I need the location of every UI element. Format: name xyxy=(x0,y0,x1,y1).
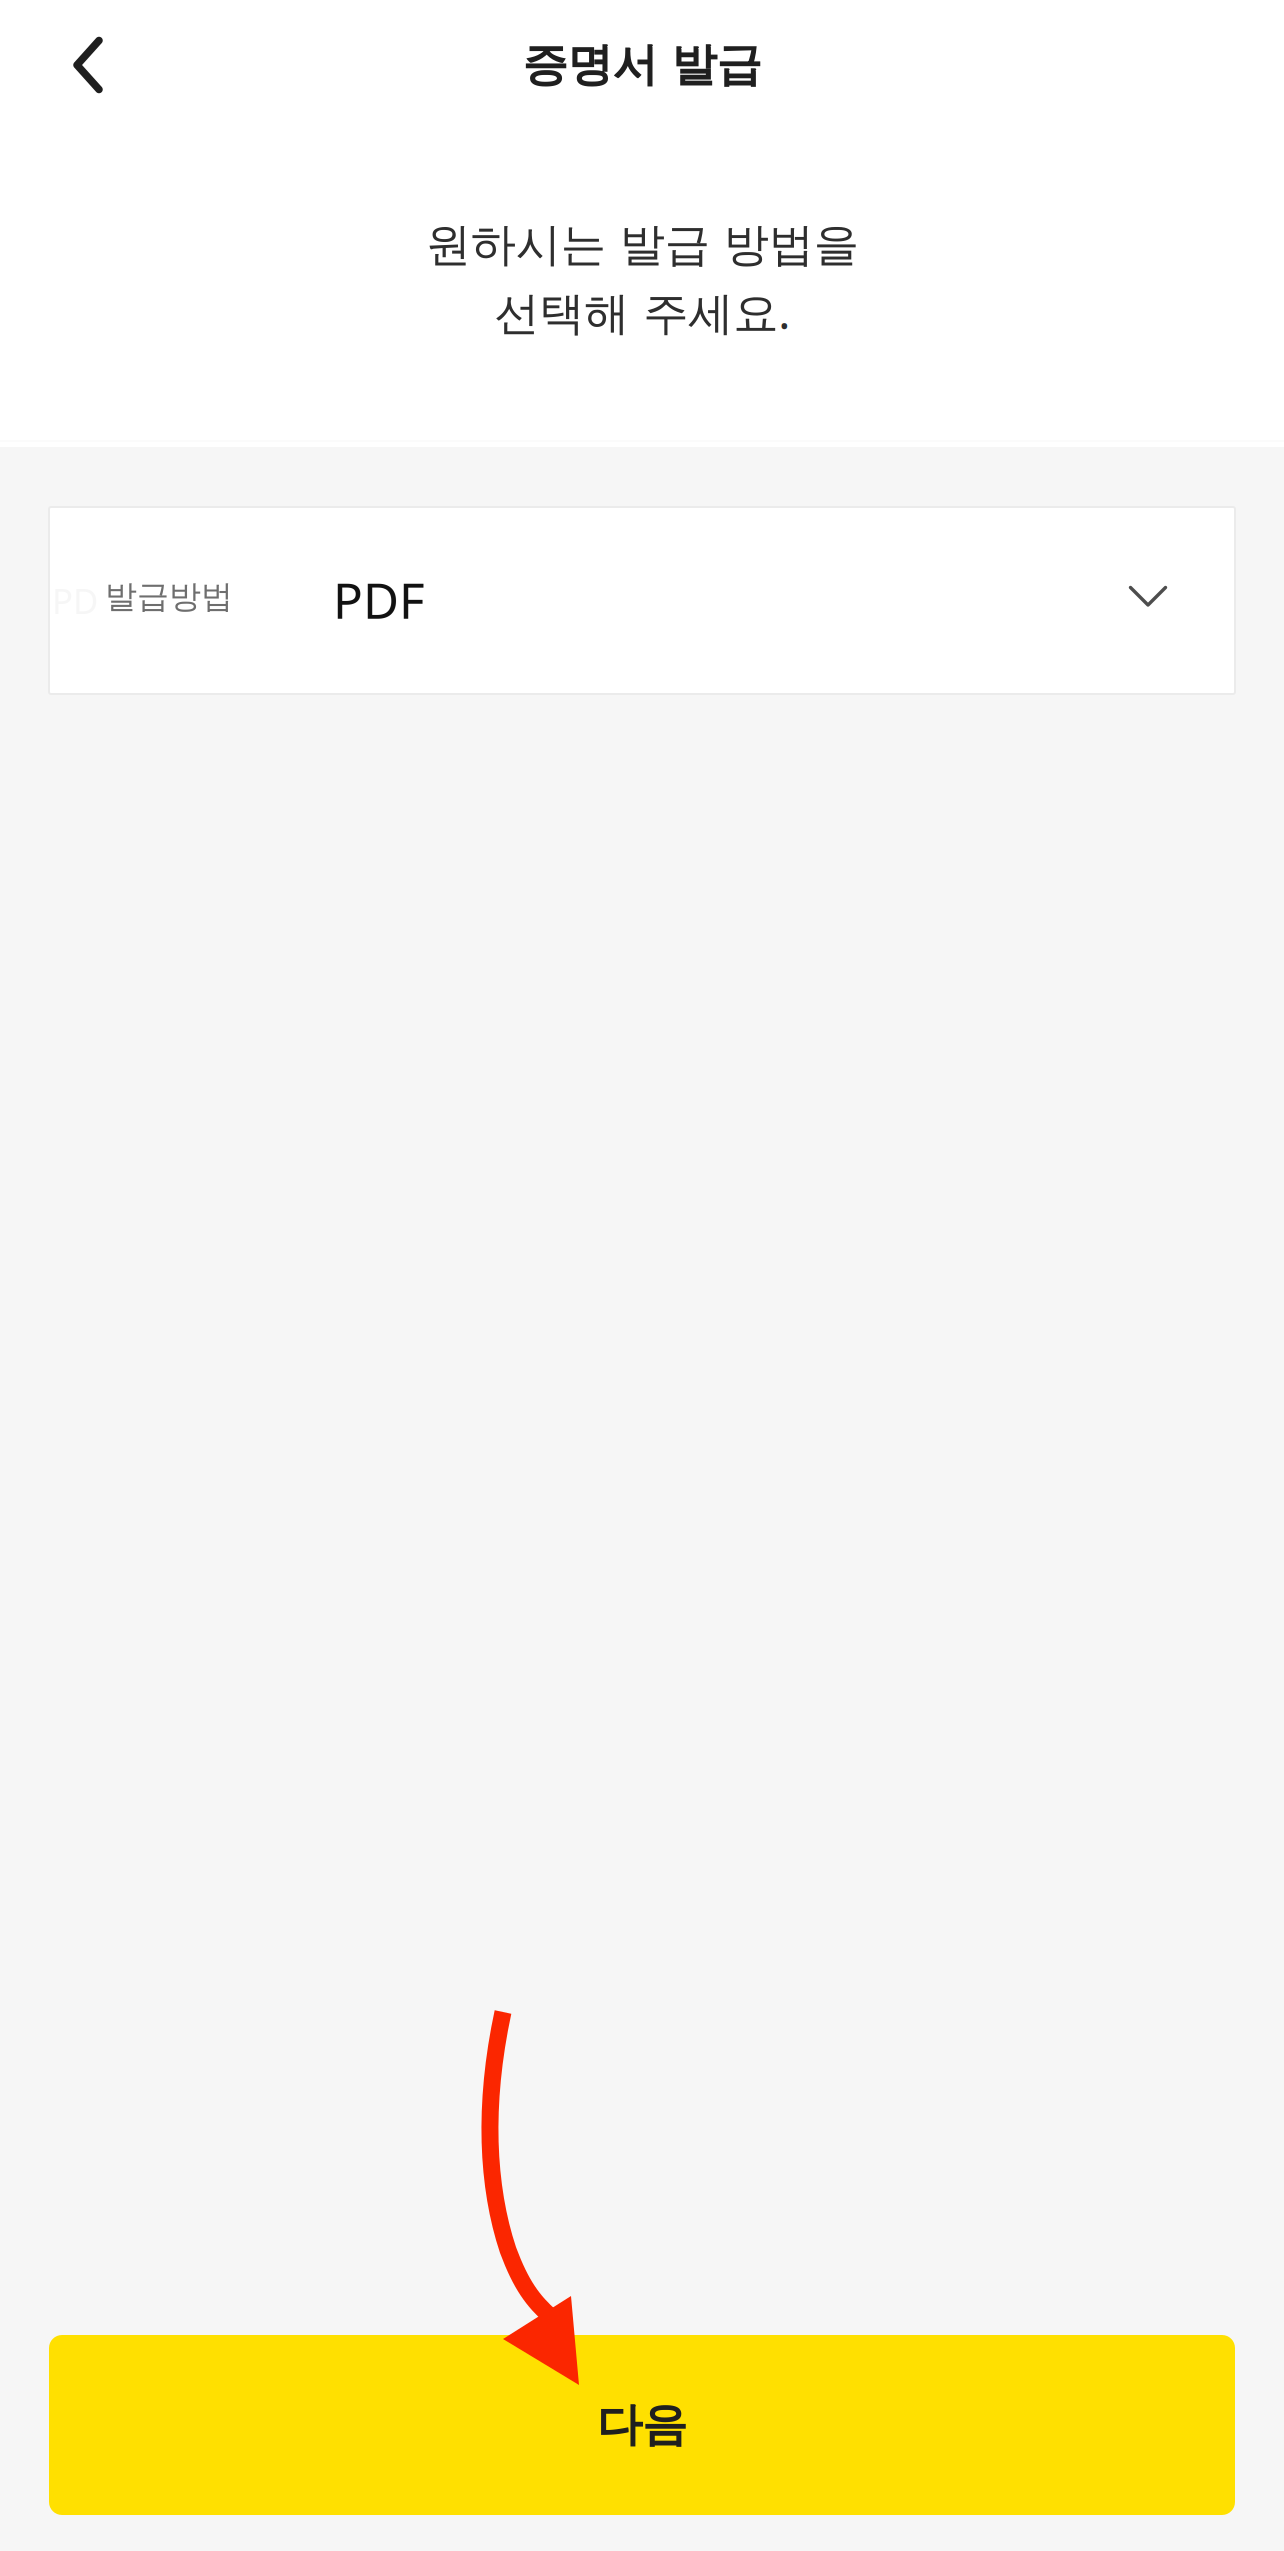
staticText: PDF xyxy=(333,567,425,632)
staticText: PD xyxy=(52,577,98,623)
button[interactable]: 다음 xyxy=(49,2335,1235,2515)
staticText: 증명서 발급 xyxy=(522,37,761,93)
button[interactable]: PD xyxy=(49,507,1235,694)
staticText: 원하시는 발급 방법을 선택해 주세요. xyxy=(425,217,858,342)
staticText: 다음 xyxy=(597,2397,687,2453)
staticText: 발급방법 xyxy=(105,577,233,616)
button[interactable]: Back xyxy=(0,0,132,130)
